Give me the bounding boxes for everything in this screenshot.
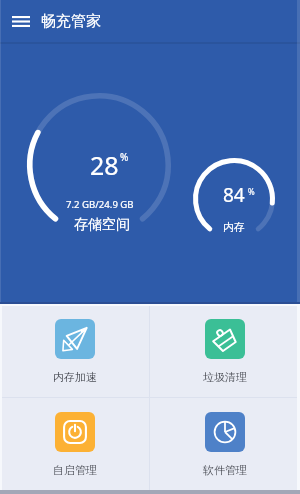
button[interactable]: 软件管理 — [150, 398, 300, 490]
staticText: 垃圾清理 — [203, 370, 247, 384]
staticText: 畅充管家 — [41, 12, 101, 31]
button[interactable]: Menu — [0, 1, 41, 42]
button[interactable]: 内存加速 — [0, 306, 149, 397]
staticText: % — [120, 150, 129, 164]
staticText: 软件管理 — [203, 463, 247, 477]
staticText: 7.2 GB/24.9 GB — [66, 198, 134, 211]
staticText: 28 — [90, 148, 119, 182]
staticText: 内存加速 — [53, 370, 97, 384]
button[interactable]: 垃圾清理 — [150, 306, 300, 397]
staticText: 自启管理 — [53, 463, 97, 477]
staticText: 存储空间 — [74, 216, 130, 234]
staticText: 内存 — [223, 220, 245, 234]
button[interactable]: 自启管理 — [0, 398, 149, 490]
staticText: 84 — [223, 182, 245, 208]
staticText: % — [248, 186, 255, 197]
